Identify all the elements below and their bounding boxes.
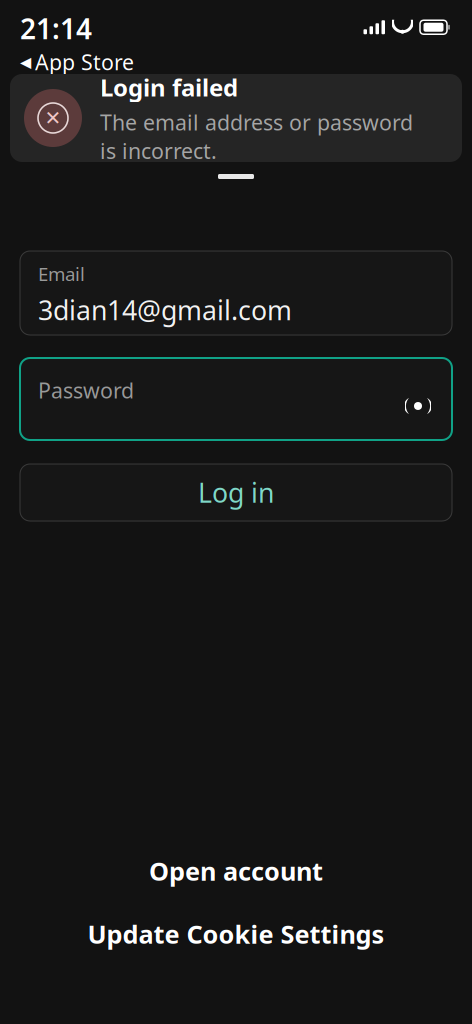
button[interactable]: Email — [0, 251, 472, 335]
staticText: Log in — [198, 475, 274, 510]
staticText: ✕ — [44, 107, 61, 129]
staticText: The email address or password is incorre… — [100, 108, 413, 165]
staticText: Email — [38, 261, 85, 286]
staticText: 21:14 — [20, 10, 92, 47]
staticText: Password — [38, 376, 134, 404]
staticText: 3dian14@gmail.com — [38, 292, 292, 328]
button[interactable]: Open account — [0, 849, 472, 893]
button[interactable]: Password — [0, 358, 472, 440]
staticText: App Store — [35, 48, 134, 76]
staticText: Login failed — [100, 71, 238, 103]
staticText: Update Cookie Settings — [87, 917, 384, 951]
staticText: ◀ — [20, 54, 31, 70]
staticText: Open account — [149, 854, 323, 888]
button[interactable]: Log in — [0, 464, 472, 521]
button[interactable]: Update Cookie Settings — [0, 912, 472, 956]
